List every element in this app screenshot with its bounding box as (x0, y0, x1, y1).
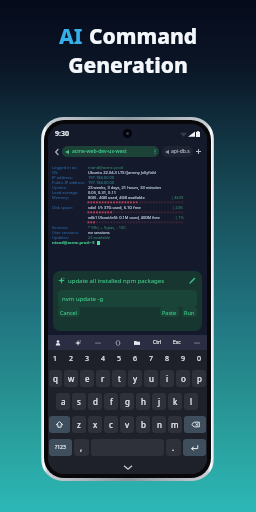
staticText: 0.05, 0.31, 0.11 (88, 190, 117, 195)
button[interactable]: Run (182, 307, 197, 317)
staticText: . (172, 442, 175, 453)
button[interactable]: b (136, 416, 150, 433)
staticText: AI (59, 22, 89, 51)
button[interactable]: m (168, 416, 182, 433)
button[interactable]: p (192, 370, 206, 387)
staticText: Load average: (52, 190, 79, 195)
staticText: Ctrl (153, 339, 162, 346)
button[interactable]: Shift (49, 416, 70, 433)
button[interactable]: j (152, 393, 166, 410)
button[interactable]: e (80, 370, 94, 387)
staticText: p (197, 373, 202, 384)
staticText: g (125, 396, 130, 407)
staticText: sda1 (/): 37G used, 6.1G free (88, 205, 141, 210)
staticText: vdb1 (/boot/efi): 0.1M used, 400M free (88, 215, 160, 220)
staticText: j (158, 396, 161, 407)
button[interactable]: More (90, 336, 106, 349)
button[interactable]: Snippets (110, 336, 126, 349)
staticText: 3 (85, 354, 90, 364)
button[interactable]: Backspace (184, 416, 206, 433)
button[interactable]: s (72, 393, 86, 410)
button[interactable]: k (168, 393, 182, 410)
staticText: Services: (52, 225, 69, 230)
button[interactable]: Back (51, 146, 62, 157)
button[interactable]: update all installed npm packages (58, 271, 197, 290)
button[interactable]: 6 (127, 350, 143, 367)
button[interactable]: q (49, 370, 62, 387)
button[interactable]: Enter (183, 439, 206, 456)
staticText: ?123 (55, 444, 66, 451)
button[interactable]: Cancel (58, 307, 80, 317)
staticText: 23 available (88, 235, 111, 240)
button[interactable]: Ctrl (149, 336, 165, 349)
button[interactable]: 5 (111, 350, 127, 367)
staticText: Public IP address: (52, 180, 86, 185)
staticText: h (141, 396, 146, 407)
staticText: ntand@acme-prod (88, 165, 124, 170)
button[interactable]: u (144, 370, 158, 387)
button[interactable]: api-db.s (165, 146, 190, 157)
button[interactable]: 3 (79, 350, 95, 367)
button[interactable]: 8 (159, 350, 175, 367)
staticText: v (125, 419, 130, 430)
button[interactable]: x (88, 416, 102, 433)
staticText: 0 (197, 354, 202, 364)
staticText: m (171, 419, 179, 430)
button[interactable]: g (120, 393, 134, 410)
button[interactable]: d (88, 393, 102, 410)
button[interactable]: nvm update -g (62, 290, 197, 307)
button[interactable]: Paste (160, 307, 179, 317)
staticText: n (157, 419, 162, 430)
staticText: 4 (101, 354, 106, 364)
staticText: 23 weeks, 3 days, 21 hours, 33 minutes (88, 185, 162, 190)
button[interactable]: New tab (193, 146, 204, 157)
button[interactable]: i (160, 370, 174, 387)
staticText: z (77, 419, 81, 430)
button[interactable]: h (136, 393, 150, 410)
button[interactable]: w (64, 370, 78, 387)
staticText: k (173, 396, 178, 407)
button[interactable]: t (112, 370, 126, 387)
staticText: Paste (162, 309, 177, 316)
button[interactable]: Edit (188, 276, 197, 285)
staticText: 2 (69, 354, 74, 364)
button[interactable]: acme-web-dev-us-west (65, 146, 156, 157)
button[interactable]: z (72, 416, 86, 433)
button[interactable]: c (104, 416, 118, 433)
button[interactable]: Hide keyboard (121, 461, 135, 473)
staticText: no sessions (88, 230, 110, 235)
staticText: Updates: (52, 235, 69, 240)
button[interactable]: f (104, 393, 118, 410)
button[interactable]: v (120, 416, 134, 433)
button[interactable]: Profile (50, 336, 66, 349)
button[interactable]: Overflow (189, 336, 205, 349)
staticText: * 9fhi, + 9gtas, - 100 (88, 225, 126, 230)
button[interactable]: r (96, 370, 110, 387)
button[interactable]: ?123 (49, 439, 72, 456)
button[interactable]: 1 (48, 350, 63, 367)
staticText: 9 (181, 354, 186, 364)
button[interactable]: , (74, 439, 89, 456)
staticText: Uptime: (52, 185, 67, 190)
staticText: t (118, 373, 121, 384)
staticText: Logged in as: (52, 165, 77, 170)
staticText: d (93, 396, 98, 407)
button[interactable]: 2 (63, 350, 79, 367)
button[interactable]: Esc (169, 336, 185, 349)
button[interactable]: . (166, 439, 181, 456)
button[interactable]: a (56, 393, 70, 410)
button[interactable]: 0 (191, 350, 207, 367)
button[interactable]: AI suggest (70, 336, 86, 349)
button[interactable]: 4 (95, 350, 111, 367)
staticText: Run (184, 309, 195, 316)
button[interactable]: l (184, 393, 198, 410)
button[interactable]: Files (129, 336, 145, 349)
button[interactable]: n (152, 416, 166, 433)
staticText: 197.184.00.00 (88, 175, 115, 180)
button[interactable]: 7 (143, 350, 159, 367)
staticText: x (93, 419, 98, 430)
button[interactable]: 9 (175, 350, 191, 367)
button[interactable]: y (128, 370, 142, 387)
button[interactable]: o (176, 370, 190, 387)
